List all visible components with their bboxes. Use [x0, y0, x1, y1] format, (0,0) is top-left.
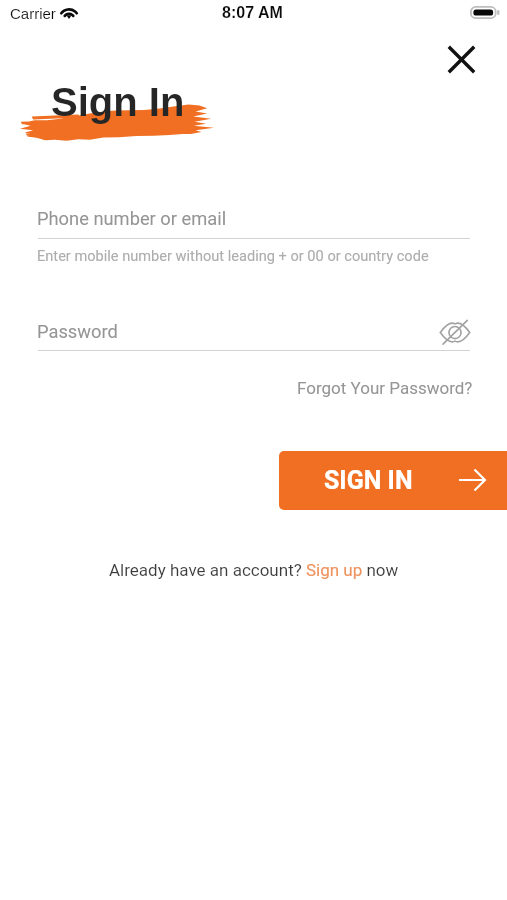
button[interactable]: Already have an account? Sign up now — [109, 560, 399, 580]
staticText: Forgot Your Password? — [297, 378, 473, 398]
button[interactable]: Forgot Your Password? — [297, 378, 473, 398]
staticText: 8:07 AM — [222, 4, 283, 22]
staticText: SIGN IN — [324, 466, 413, 495]
staticText: Sign In — [51, 80, 185, 125]
staticText: Already have an account? Sign up now — [109, 560, 399, 580]
staticText: Password — [37, 321, 118, 342]
button[interactable]: SIGN IN — [279, 451, 507, 510]
staticText: Carrier — [10, 5, 56, 22]
button[interactable]: Show password — [435, 312, 475, 352]
staticText: Enter mobile number without leading + or… — [37, 247, 429, 264]
staticText: Phone number or email — [37, 208, 227, 229]
button[interactable]: Close — [439, 37, 483, 81]
